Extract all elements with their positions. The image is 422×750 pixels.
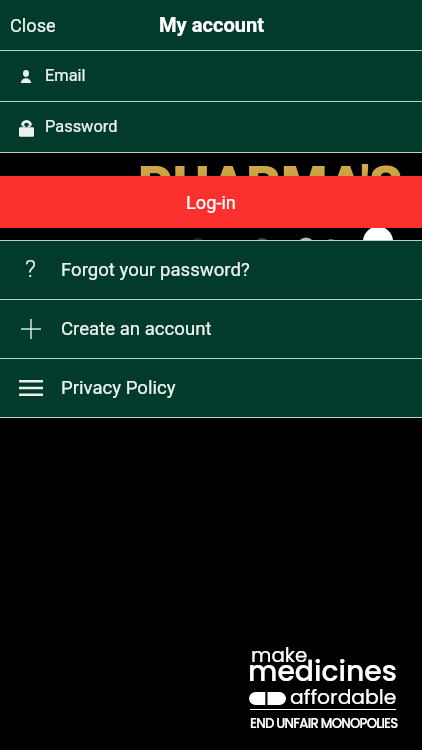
staticText: Privacy Policy [61,377,176,399]
staticText: My account [159,13,265,37]
button[interactable]: Email [0,51,422,101]
staticText: Close [10,15,56,36]
button[interactable]: Close [0,6,70,45]
staticText: medicines [248,651,397,691]
staticText: make [251,641,308,669]
staticText: PHARMA'S [138,155,403,217]
staticText: Email [45,66,86,85]
button[interactable]: Log-in [0,176,422,228]
other: Privacy Policy [19,380,43,396]
staticText: Forgot your password? [61,259,250,281]
staticText: Password [45,117,118,136]
other: Create an account [21,319,41,339]
button[interactable]: Privacy Policy [0,359,422,417]
other: Password [19,120,34,137]
button[interactable]: Password [0,102,422,152]
staticText: Create an account [61,318,212,340]
staticText: affordable [290,683,397,711]
button[interactable]: Create an account [0,300,422,358]
staticText: END UNFAIR MONOPOLIES [250,714,398,732]
button[interactable]: Help [0,241,422,299]
staticText: Log-in [186,192,236,213]
staticText: ? [25,255,36,283]
other: Email [20,70,32,83]
